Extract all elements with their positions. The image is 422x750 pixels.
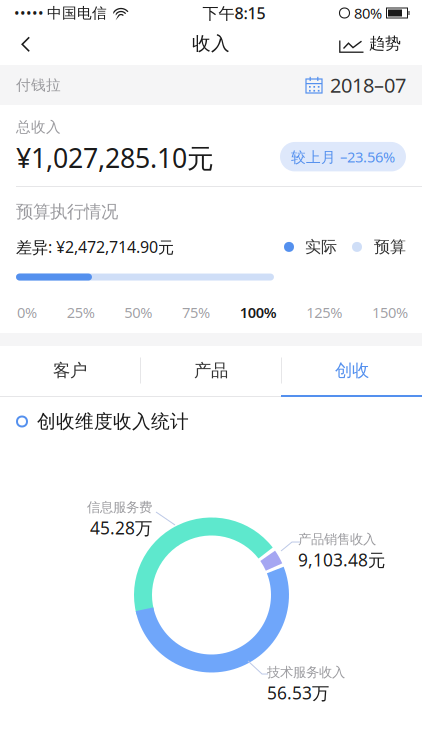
staticText: 56.53万 bbox=[267, 681, 329, 704]
staticText: 下午8:15 bbox=[202, 2, 265, 24]
staticText: ¥1,027,285.10元 bbox=[16, 140, 214, 175]
button[interactable]: 产品 bbox=[141, 346, 281, 395]
staticText: 45.28万 bbox=[90, 516, 152, 539]
staticText: 实际 bbox=[305, 237, 337, 257]
button[interactable]: 返回 bbox=[0, 26, 45, 65]
button[interactable]: 2018–07 bbox=[305, 72, 406, 98]
staticText: 差异: ¥2,472,714.90元 bbox=[16, 236, 174, 257]
staticText: 0% bbox=[17, 302, 37, 322]
staticText: 125% bbox=[306, 302, 342, 322]
button[interactable]: 客户 bbox=[0, 346, 140, 395]
staticText: 收入 bbox=[192, 32, 230, 55]
staticText: 产品销售收入 bbox=[298, 531, 376, 547]
staticText: 付钱拉 bbox=[16, 76, 61, 94]
staticText: 客户 bbox=[53, 360, 87, 381]
staticText: 9,103.48元 bbox=[298, 548, 385, 571]
button[interactable]: 创收 bbox=[282, 346, 422, 395]
staticText: 趋势 bbox=[369, 34, 401, 53]
staticText: 总收入 bbox=[16, 118, 61, 136]
staticText: 较上月 –23.56% bbox=[291, 147, 395, 166]
staticText: 50% bbox=[124, 302, 152, 322]
staticText: 中国电信 bbox=[47, 4, 107, 22]
button[interactable]: 趋势 bbox=[339, 26, 422, 65]
staticText: ••••• bbox=[14, 3, 44, 23]
staticText: 信息服务费 bbox=[87, 499, 152, 515]
staticText: 技术服务收入 bbox=[267, 664, 345, 680]
staticText: 产品 bbox=[194, 360, 228, 381]
staticText: 2018–07 bbox=[330, 72, 406, 98]
staticText: 创收 bbox=[335, 360, 369, 381]
staticText: 创收维度收入统计 bbox=[37, 410, 189, 433]
staticText: 150% bbox=[372, 302, 408, 322]
staticText: 80% bbox=[354, 3, 382, 23]
staticText: 预算执行情况 bbox=[16, 201, 118, 222]
staticText: 75% bbox=[182, 302, 210, 322]
button[interactable]: 较上月 –23.56% bbox=[280, 142, 406, 171]
staticText: 预算 bbox=[374, 237, 406, 257]
staticText: 25% bbox=[67, 302, 95, 322]
staticText: 100% bbox=[240, 302, 277, 322]
